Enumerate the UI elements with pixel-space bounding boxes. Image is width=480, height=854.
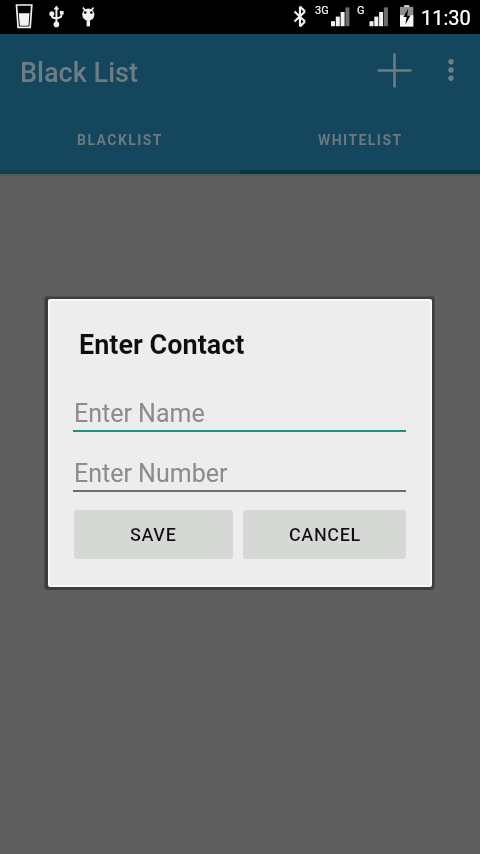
button[interactable]: CANCEL xyxy=(243,510,406,559)
staticText: 11:30 xyxy=(421,6,471,29)
button[interactable]: Add contact xyxy=(368,44,420,96)
button[interactable]: BLACKLIST xyxy=(0,106,240,174)
staticText: SAVE xyxy=(130,524,177,545)
staticText: WHITELIST xyxy=(318,132,403,148)
staticText: Enter Contact xyxy=(79,329,245,361)
staticText: Enter Name xyxy=(74,399,205,428)
button[interactable]: More options xyxy=(427,46,475,94)
staticText: 3G xyxy=(315,4,329,17)
staticText: G xyxy=(357,4,365,17)
staticText: Black List xyxy=(20,57,139,89)
staticText: CANCEL xyxy=(289,524,361,545)
button[interactable]: SAVE xyxy=(74,510,233,559)
staticText: BLACKLIST xyxy=(77,132,163,148)
staticText: Enter Number xyxy=(74,459,228,488)
button[interactable]: WHITELIST xyxy=(240,106,480,174)
